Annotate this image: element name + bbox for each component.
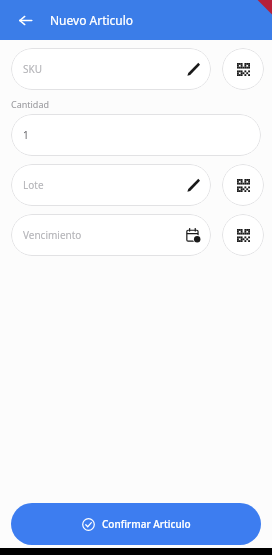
staticText: Cantidad — [11, 98, 49, 110]
button[interactable]: SKU — [11, 48, 211, 90]
staticText: Lote — [23, 178, 44, 192]
button[interactable]: Lote — [11, 164, 211, 206]
staticText: Vencimiento — [23, 228, 82, 242]
staticText: Nuevo Articulo — [50, 12, 134, 28]
button[interactable]: Confirmar Articulo — [11, 503, 261, 545]
button[interactable]: 1 — [11, 114, 261, 156]
button[interactable]: Vencimiento — [11, 214, 211, 256]
button[interactable]: Escanear Lote — [222, 164, 264, 206]
staticText: 1 — [23, 128, 29, 142]
staticText: Confirmar Articulo — [102, 517, 191, 531]
button[interactable]: Atrás — [12, 7, 38, 33]
button[interactable]: Escanear SKU — [222, 48, 264, 90]
staticText: SKU — [23, 62, 42, 76]
button[interactable]: Escanear Vencimiento — [222, 214, 264, 256]
